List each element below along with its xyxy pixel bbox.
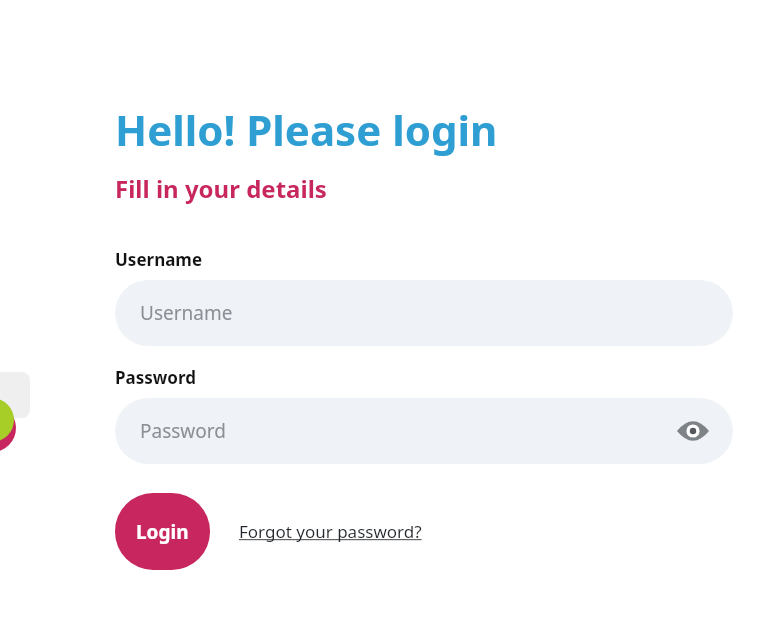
button[interactable]: Show password	[675, 413, 711, 449]
staticText: Login	[136, 519, 189, 545]
staticText: Username	[115, 248, 203, 271]
staticText: Fill in your details	[115, 172, 327, 205]
button[interactable]: Login	[115, 493, 210, 570]
staticText: Forgot your password?	[239, 520, 422, 543]
button[interactable]: Username	[115, 280, 733, 346]
staticText: Username	[140, 300, 233, 326]
staticText: Password	[115, 366, 196, 389]
button[interactable]: Forgot your password?	[239, 514, 422, 549]
button[interactable]: Password	[115, 398, 733, 464]
staticText: Password	[140, 418, 226, 444]
staticText: Hello! Please login	[115, 101, 498, 158]
